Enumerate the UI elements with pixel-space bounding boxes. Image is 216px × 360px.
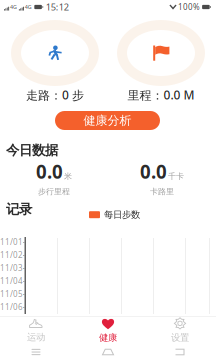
staticText: 100% — [178, 2, 200, 12]
staticText: 设置 — [171, 332, 189, 343]
button[interactable]: 设置 — [144, 317, 216, 344]
staticText: 健康 — [99, 332, 117, 343]
staticText: 4G — [10, 3, 17, 11]
staticText: 健康分析 — [83, 113, 131, 128]
button[interactable]: 运动 — [0, 317, 72, 344]
staticText: 11/06 — [0, 302, 23, 312]
staticText: 米 — [64, 171, 72, 181]
staticText: 15:12 — [46, 1, 69, 13]
button[interactable]: 健康分析 — [55, 111, 160, 130]
button[interactable]: 健康 — [72, 317, 144, 344]
staticText: 记录 — [6, 201, 32, 217]
staticText: 每日步数 — [104, 209, 140, 220]
staticText: 4G — [25, 3, 32, 11]
button[interactable]: Home — [72, 344, 144, 360]
button[interactable]: Back — [144, 344, 216, 360]
staticText: 运动 — [27, 331, 45, 343]
staticText: 11/04 — [0, 276, 23, 286]
staticText: 走路：0 步 — [26, 87, 84, 103]
staticText: 今日数据 — [6, 142, 58, 158]
staticText: 卡路里 — [150, 187, 174, 197]
staticText: 千卡 — [168, 171, 184, 181]
staticText: 11/03 — [0, 263, 23, 273]
staticText: 11/05 — [0, 289, 23, 299]
staticText: 0.0 — [140, 159, 167, 184]
staticText: 步行里程 — [38, 187, 70, 197]
button[interactable]: Recents — [0, 344, 72, 360]
staticText: 里程：0.0 M — [127, 87, 194, 103]
staticText: 11/02 — [0, 250, 23, 260]
staticText: 0.0 — [36, 159, 63, 184]
staticText: 11/01 — [0, 237, 23, 247]
